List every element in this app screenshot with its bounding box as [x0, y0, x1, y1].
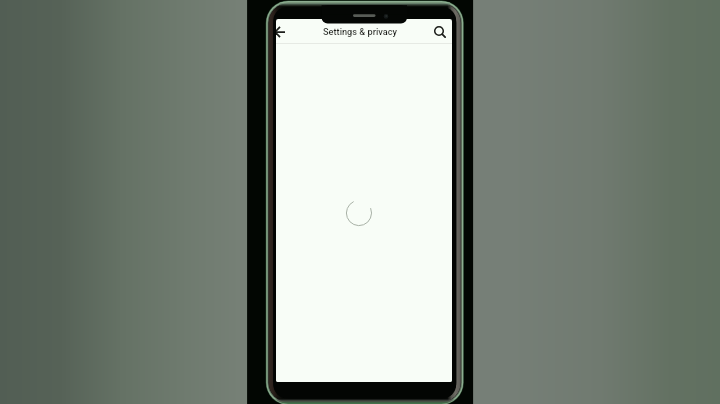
- button[interactable]: Search: [429, 21, 449, 41]
- staticText: Settings & privacy: [323, 26, 397, 37]
- button[interactable]: Back: [276, 22, 290, 42]
